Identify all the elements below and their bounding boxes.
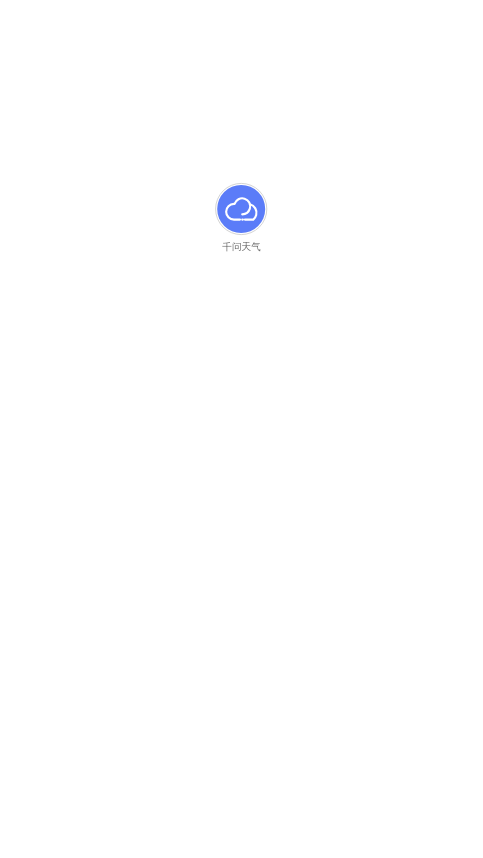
button[interactable]: 千问天气 — [211, 179, 271, 239]
staticText: 千问天气 — [222, 241, 261, 253]
